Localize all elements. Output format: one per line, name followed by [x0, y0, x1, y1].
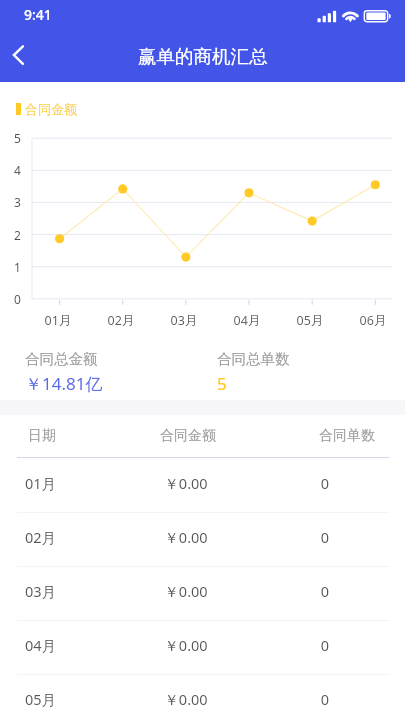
button[interactable]: 05月	[0, 674, 405, 720]
staticText: 4	[14, 162, 21, 178]
staticText: ￥0.00	[126, 581, 246, 601]
staticText: 5	[14, 130, 21, 146]
staticText: 合同总单数	[217, 350, 290, 368]
staticText: 0	[14, 291, 21, 307]
staticText: 0	[265, 473, 385, 493]
button[interactable]: 01月	[0, 458, 405, 512]
staticText: 05月	[25, 689, 57, 709]
staticText: 0	[265, 635, 385, 655]
staticText: 02月	[25, 527, 57, 547]
button[interactable]: 02月	[0, 512, 405, 566]
staticText: 5	[217, 372, 227, 395]
staticText: 0	[265, 527, 385, 547]
staticText: 2	[14, 227, 21, 243]
staticText: 03月	[164, 312, 204, 329]
staticText: 合同单数	[287, 427, 405, 445]
staticText: 06月	[353, 312, 393, 329]
staticText: 合同金额	[128, 427, 248, 445]
staticText: ￥0.00	[126, 527, 246, 547]
staticText: 04月	[25, 635, 57, 655]
staticText: 3	[14, 194, 21, 210]
staticText: 04月	[227, 312, 267, 329]
staticText: ￥0.00	[126, 635, 246, 655]
button[interactable]: 04月	[0, 620, 405, 674]
staticText: 合同金额	[25, 101, 77, 117]
button[interactable]: 03月	[0, 566, 405, 620]
staticText: ￥0.00	[126, 473, 246, 493]
staticText: 0	[265, 581, 385, 601]
button[interactable]: Back	[0, 33, 38, 77]
staticText: 0	[265, 689, 385, 709]
staticText: 03月	[25, 581, 57, 601]
staticText: 日期	[28, 427, 56, 445]
staticText: 01月	[25, 473, 57, 493]
staticText: 9:41	[24, 5, 52, 24]
staticText: 05月	[290, 312, 330, 329]
staticText: 01月	[38, 312, 78, 329]
staticText: 1	[14, 259, 21, 275]
staticText: 02月	[101, 312, 141, 329]
staticText: ￥14.81亿	[25, 372, 103, 395]
staticText: ￥0.00	[126, 689, 246, 709]
staticText: 赢单的商机汇总	[138, 45, 268, 68]
staticText: 合同总金额	[25, 350, 98, 368]
